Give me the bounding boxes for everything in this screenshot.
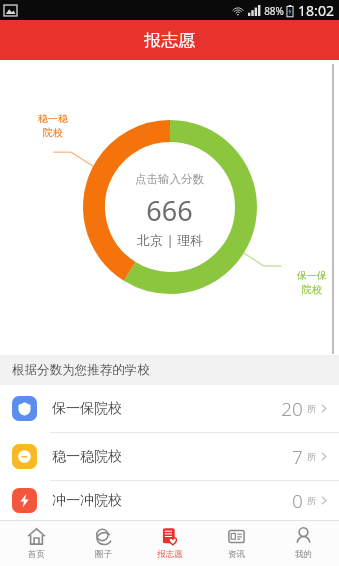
button[interactable]: 冲一冲院校: [0, 481, 339, 520]
staticText: 所: [307, 495, 316, 506]
button[interactable]: 资讯: [205, 524, 267, 563]
staticText: 根据分数为您推荐的学校: [12, 362, 150, 378]
staticText: 院校: [302, 283, 322, 296]
staticText: 保一保院校: [52, 400, 122, 418]
staticText: 我的: [295, 549, 312, 560]
button[interactable]: 点击输入分数: [117, 168, 222, 253]
button[interactable]: 保一保院校: [0, 385, 339, 432]
staticText: 所: [307, 403, 316, 414]
staticText: 88%: [264, 4, 284, 18]
button[interactable]: 圈子: [72, 524, 134, 563]
staticText: 666: [146, 192, 193, 229]
staticText: 报志愿: [144, 30, 195, 51]
staticText: 18:02: [298, 1, 334, 20]
staticText: 冲一冲院校: [52, 492, 122, 510]
staticText: 稳一稳: [38, 112, 68, 125]
staticText: 保一保: [297, 269, 327, 282]
staticText: 院校: [43, 126, 63, 139]
button[interactable]: 报志愿: [139, 524, 201, 563]
staticText: 所: [307, 451, 316, 462]
staticText: 0: [292, 488, 303, 514]
staticText: 7: [292, 444, 303, 470]
staticText: 点击输入分数: [135, 172, 204, 186]
staticText: 资讯: [228, 549, 245, 560]
staticText: 圈子: [95, 549, 112, 560]
button[interactable]: 首页: [5, 524, 67, 563]
staticText: 稳一稳院校: [52, 448, 122, 466]
staticText: 北京 | 理科: [137, 231, 203, 249]
staticText: 20: [281, 396, 303, 422]
button[interactable]: 稳一稳院校: [0, 433, 339, 480]
staticText: 报志愿: [157, 549, 183, 560]
staticText: 首页: [28, 549, 45, 560]
button[interactable]: 我的: [272, 524, 334, 563]
